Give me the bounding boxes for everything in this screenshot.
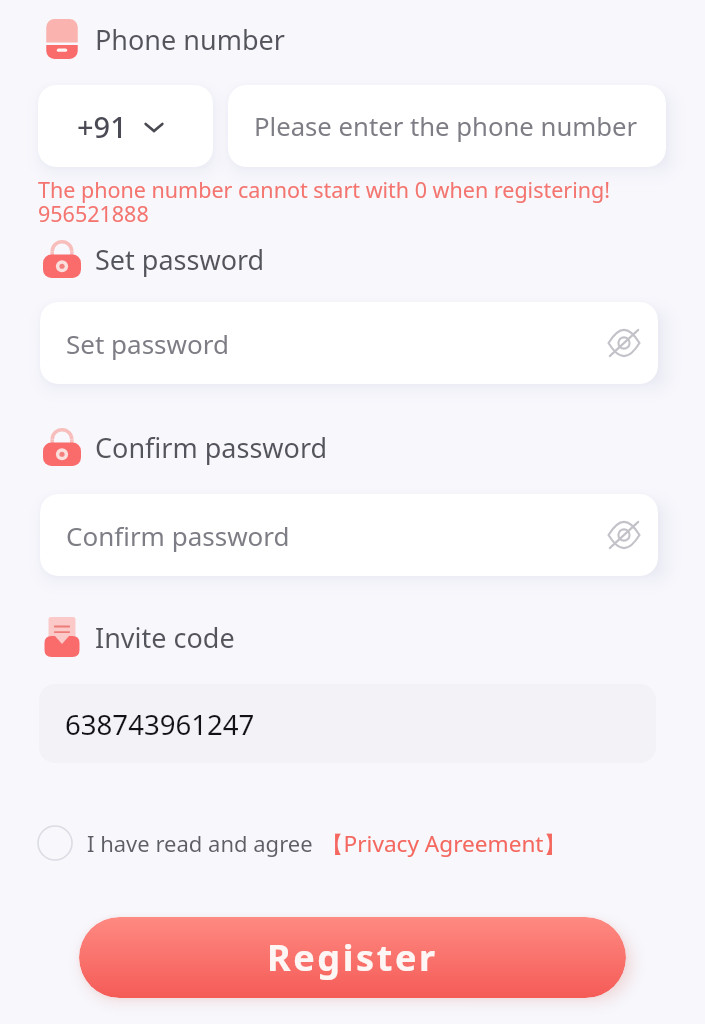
button[interactable]: Please enter the phone number <box>228 85 666 167</box>
staticText: Set password <box>66 326 229 361</box>
button[interactable]: Agree to privacy agreement <box>36 824 74 862</box>
staticText: Invite code <box>95 619 235 656</box>
staticText: Register <box>267 933 438 982</box>
button[interactable]: Confirm password <box>40 494 658 576</box>
staticText: The phone number cannot start with 0 whe… <box>38 175 611 228</box>
staticText: 638743961247 <box>65 705 255 743</box>
button[interactable]: Show password <box>604 515 644 555</box>
button[interactable]: 【Privacy Agreement】 <box>321 828 567 859</box>
staticText: Please enter the phone number <box>254 109 638 144</box>
button[interactable]: +91 <box>38 85 213 167</box>
staticText: Set password <box>95 241 265 278</box>
button[interactable]: Set password <box>40 302 658 384</box>
staticText: Confirm password <box>66 518 290 553</box>
staticText: Phone number <box>95 21 285 58</box>
button[interactable]: 638743961247 <box>39 684 656 763</box>
staticText: +91 <box>77 107 127 146</box>
button[interactable]: Show password <box>604 323 644 363</box>
staticText: I have read and agree <box>87 828 313 858</box>
button[interactable]: Register <box>79 917 626 998</box>
staticText: Confirm password <box>95 429 328 466</box>
